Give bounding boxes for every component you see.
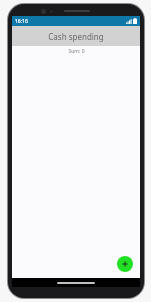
staticText: Sum: 0 xyxy=(68,48,85,55)
staticText: Cash spending xyxy=(48,31,104,42)
button[interactable]: Add spending xyxy=(117,256,133,272)
button[interactable]: Home xyxy=(57,282,95,284)
staticText: 16:16 xyxy=(15,18,28,25)
